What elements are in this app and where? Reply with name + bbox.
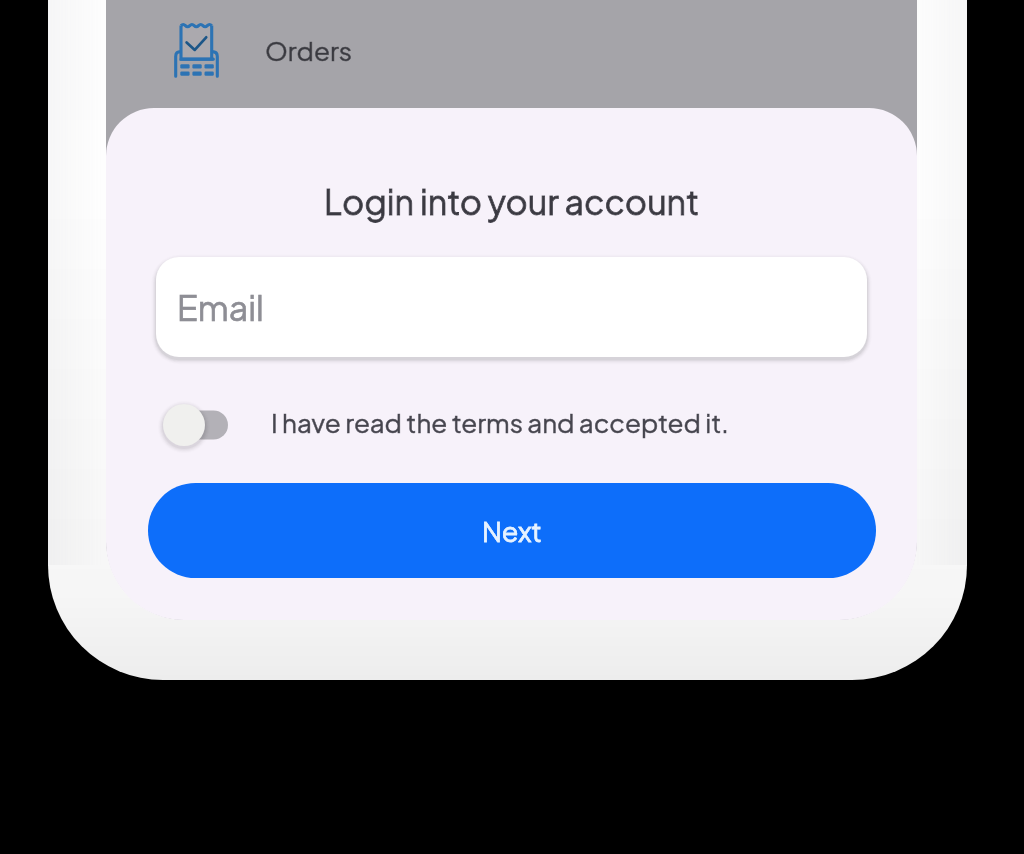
staticText: I have read the terms and accepted it. <box>271 406 729 439</box>
button[interactable]: Email <box>156 257 867 357</box>
staticText: Next <box>482 514 542 548</box>
button[interactable]: Next <box>148 483 876 578</box>
staticText: Login into your account <box>324 180 700 223</box>
button[interactable]: I have read the terms and accepted it. <box>163 403 727 447</box>
staticText: Email <box>177 286 264 329</box>
button[interactable]: Orders <box>106 0 917 100</box>
staticText: Orders <box>265 34 352 67</box>
other: Orders <box>174 23 219 77</box>
